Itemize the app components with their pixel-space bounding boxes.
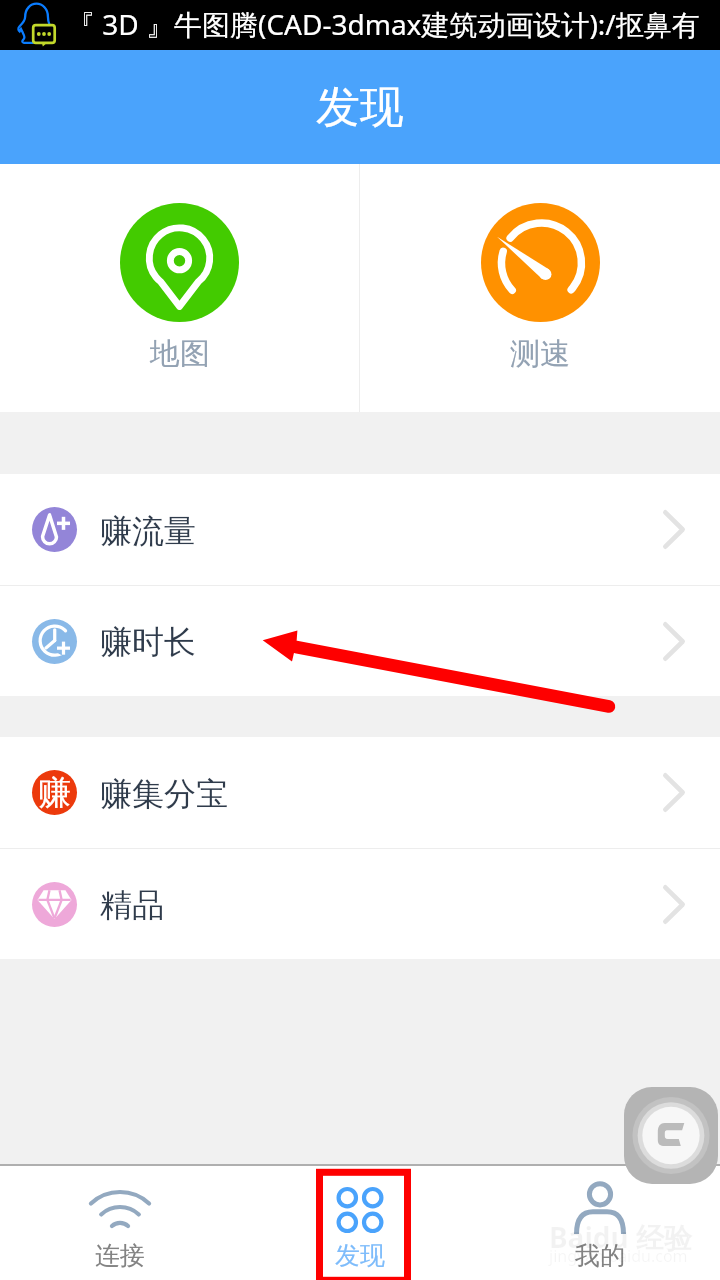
staticText: 地图 <box>150 335 210 373</box>
staticText: 连接 <box>95 1240 145 1271</box>
button[interactable]: 赚时长 <box>0 586 720 696</box>
staticText: 赚流量 <box>100 511 196 551</box>
staticText: 精品 <box>100 885 164 925</box>
staticText: 我的 <box>575 1240 625 1271</box>
staticText: 发现 <box>335 1240 385 1271</box>
staticText: 发现 <box>316 80 404 135</box>
staticText: Baidu 经验 <box>549 1218 692 1256</box>
button[interactable]: 精品 <box>0 849 720 959</box>
button[interactable]: 测速 <box>360 164 720 412</box>
staticText: 测速 <box>510 335 570 373</box>
staticText: 『 3D 』牛图腾(CAD-3dmax建筑动画设计):/抠鼻有 <box>67 5 700 43</box>
staticText: 赚集分宝 <box>100 774 228 814</box>
button[interactable]: 赚流量 <box>0 474 720 585</box>
button[interactable]: 发现 <box>240 1165 480 1280</box>
button[interactable]: 我的 <box>480 1165 720 1280</box>
staticText: 赚 <box>38 772 71 814</box>
button[interactable]: Assistive touch <box>624 1087 718 1184</box>
button[interactable]: 连接 <box>0 1165 240 1280</box>
staticText: jingyan.baidu.com <box>549 1245 688 1267</box>
staticText: 赚时长 <box>100 622 196 662</box>
button[interactable]: 地图 <box>0 164 359 412</box>
button[interactable]: 赚 <box>0 737 720 848</box>
